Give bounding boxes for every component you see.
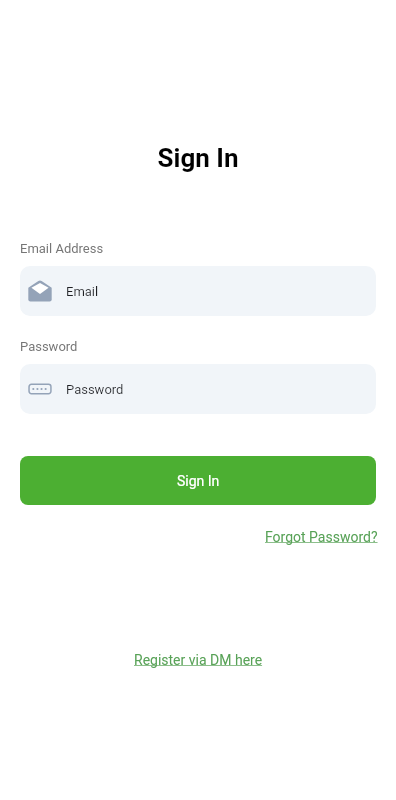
staticText: Email: [66, 284, 99, 299]
button[interactable]: Password: [20, 364, 376, 414]
staticText: Password: [66, 382, 124, 397]
button[interactable]: Forgot Password?: [265, 527, 378, 547]
other: Password: [28, 377, 52, 401]
button[interactable]: Email: [20, 266, 376, 316]
other: Email: [28, 279, 52, 303]
button[interactable]: Sign In: [20, 456, 376, 505]
staticText: Password: [20, 339, 78, 354]
staticText: Email Address: [20, 241, 104, 256]
staticText: Sign In: [177, 473, 220, 489]
button[interactable]: Register via DM here: [134, 650, 263, 670]
staticText: Sign In: [0, 143, 396, 173]
